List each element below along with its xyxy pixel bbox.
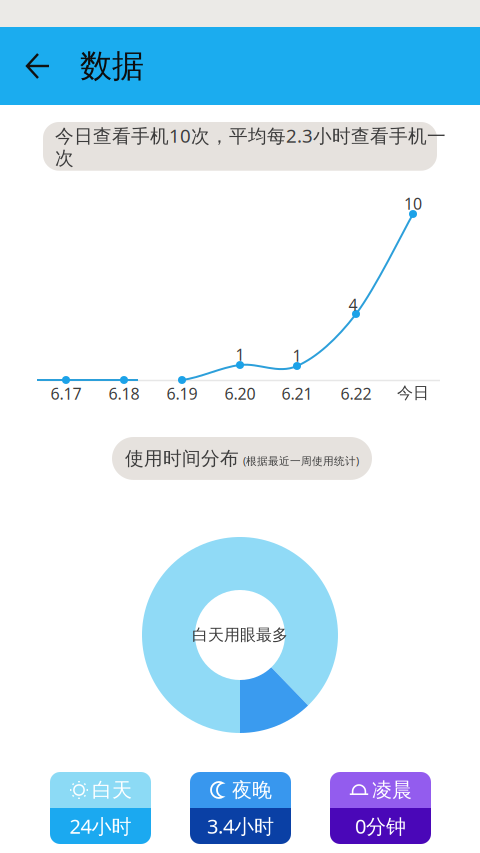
button[interactable]: Back bbox=[22, 44, 66, 88]
staticText: 6.18 bbox=[108, 383, 139, 404]
staticText: 今日查看手机10次，平均每2.3小时查看手机一 bbox=[55, 123, 446, 148]
staticText: 6.20 bbox=[224, 383, 255, 404]
staticText: 6.22 bbox=[340, 383, 371, 404]
staticText: (根据最近一周使用统计) bbox=[243, 454, 359, 468]
staticText: 白天 bbox=[92, 778, 132, 802]
staticText: 6.17 bbox=[50, 383, 81, 404]
staticText: 数据 bbox=[80, 46, 144, 86]
staticText: 使用时间分布 bbox=[125, 447, 239, 470]
staticText: 3.4小时 bbox=[207, 813, 274, 839]
staticText: 4 bbox=[348, 294, 357, 315]
staticText: 夜晚 bbox=[232, 778, 272, 802]
staticText: 次 bbox=[55, 147, 74, 170]
button[interactable]: 凌晨 bbox=[330, 772, 431, 844]
staticText: 0分钟 bbox=[355, 813, 406, 839]
staticText: 白天用眼最多 bbox=[192, 625, 288, 645]
staticText: 1 bbox=[292, 345, 301, 366]
staticText: 凌晨 bbox=[372, 778, 412, 802]
staticText: 今日 bbox=[397, 383, 429, 403]
button[interactable]: 白天 bbox=[50, 772, 151, 844]
staticText: 1 bbox=[235, 344, 244, 365]
staticText: 10 bbox=[404, 193, 422, 214]
staticText: 6.19 bbox=[166, 383, 197, 404]
staticText: 6.21 bbox=[281, 383, 312, 404]
button[interactable]: 夜晚 bbox=[190, 772, 291, 844]
staticText: 24小时 bbox=[69, 813, 131, 839]
